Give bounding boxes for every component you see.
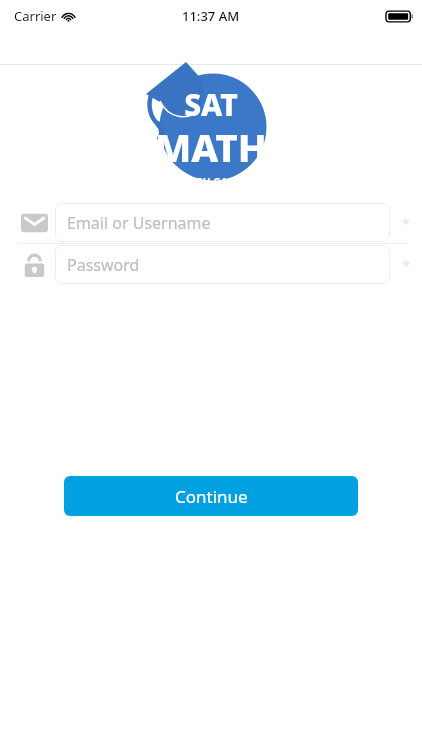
- staticText: Email or Username: [67, 212, 211, 234]
- button[interactable]: Email or Username: [0, 202, 422, 243]
- staticText: *: [402, 255, 411, 275]
- staticText: MATH: [155, 121, 267, 173]
- staticText: 11:37 AM: [182, 7, 240, 25]
- staticText: Continue: [175, 485, 248, 508]
- button[interactable]: Password: [0, 244, 422, 285]
- staticText: Carrier: [14, 7, 57, 25]
- staticText: Password: [67, 254, 140, 276]
- button[interactable]: Continue: [64, 476, 358, 516]
- staticText: SAMEH GABRA: [174, 175, 249, 189]
- staticText: *: [402, 213, 411, 233]
- staticText: SAT: [184, 84, 238, 125]
